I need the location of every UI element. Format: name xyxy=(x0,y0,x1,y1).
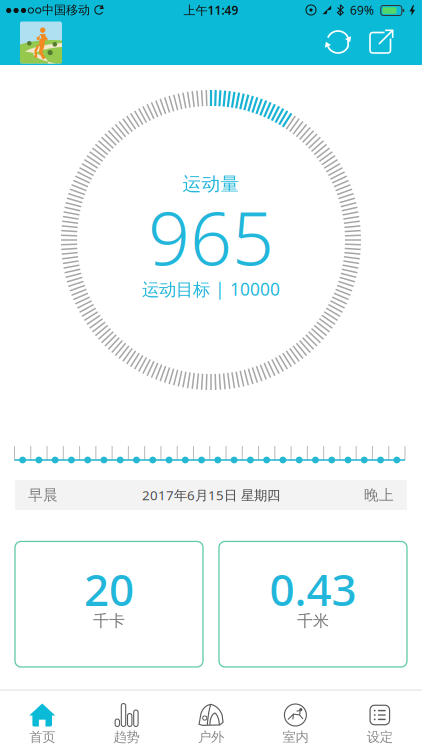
button[interactable]: Refresh xyxy=(324,28,351,55)
staticText: 965 xyxy=(148,188,274,286)
staticText: 中国移动 xyxy=(42,3,90,17)
button[interactable]: 室内 xyxy=(253,690,338,750)
button[interactable]: 设定 xyxy=(338,690,422,750)
staticText: 室内 xyxy=(282,729,308,745)
button[interactable]: App icon xyxy=(20,21,62,63)
staticText: 千卡 xyxy=(93,611,125,631)
staticText: 晚上 xyxy=(364,486,394,504)
staticText: 上午11:49 xyxy=(183,2,238,18)
staticText: 69% xyxy=(350,2,374,18)
staticText: 首页 xyxy=(29,729,55,745)
staticText: 千米 xyxy=(297,611,329,631)
button[interactable]: Share xyxy=(367,28,394,55)
staticText: 0.43 xyxy=(269,560,356,618)
staticText: 早晨 xyxy=(28,486,58,504)
button[interactable]: 户外 xyxy=(169,690,253,750)
staticText: 设定 xyxy=(367,729,393,745)
staticText: 户外 xyxy=(198,729,224,745)
button[interactable]: 首页 xyxy=(0,690,84,750)
staticText: 趋势 xyxy=(114,729,140,745)
staticText: 运动目标 | 10000 xyxy=(142,277,280,300)
button[interactable]: 趋势 xyxy=(84,690,169,750)
staticText: 运动量 xyxy=(182,172,239,195)
staticText: 2017年6月15日 星期四 xyxy=(142,486,280,504)
staticText: 20 xyxy=(84,560,134,618)
